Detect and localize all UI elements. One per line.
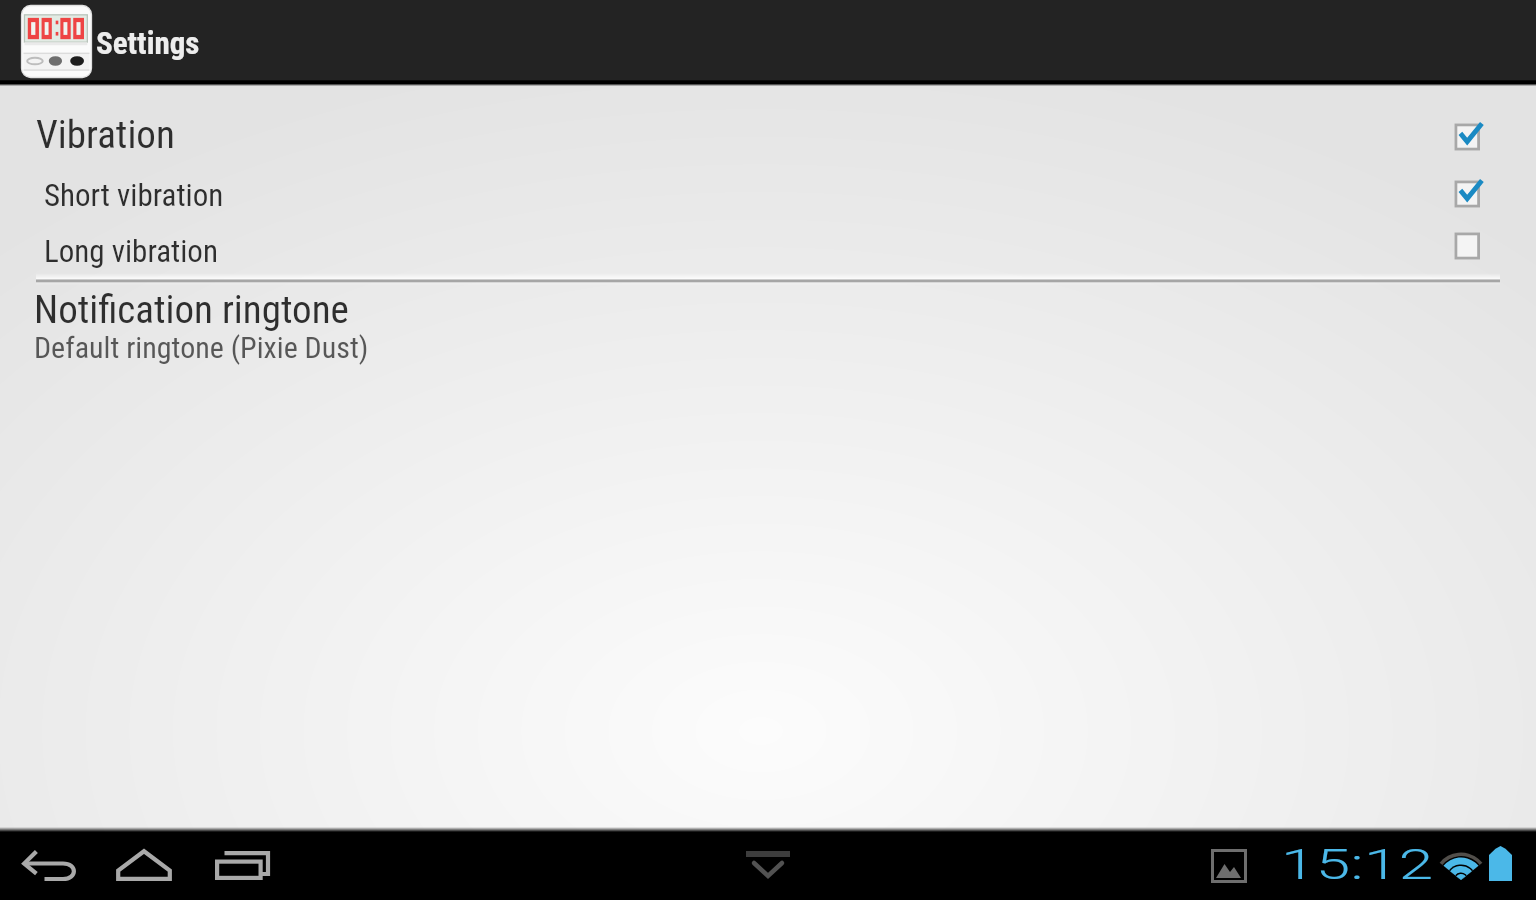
button[interactable]: Long vibration [0, 233, 1536, 287]
button[interactable]: Home [96, 838, 192, 894]
button[interactable]: Stopwatch app icon [21, 5, 92, 78]
staticText: Default ringtone (Pixie Dust) [34, 330, 369, 365]
staticText: Short vibration [44, 177, 224, 213]
button[interactable]: Notification ringtone [0, 283, 1536, 371]
button[interactable]: Short vibration [0, 177, 1536, 231]
staticText: Settings [96, 25, 200, 61]
button[interactable]: Recent apps [192, 838, 288, 894]
staticText: Notification ringtone [34, 287, 349, 333]
other: Wi-Fi connected [1441, 847, 1481, 880]
staticText: Long vibration [44, 233, 218, 269]
button[interactable]: Vibration [0, 112, 1536, 169]
button[interactable]: Back [0, 838, 96, 894]
button[interactable]: Short vibration checkbox [1443, 173, 1497, 217]
staticText: Vibration [36, 112, 175, 158]
button[interactable]: Hide keyboard [736, 842, 800, 892]
button[interactable]: Screenshot captured [1204, 842, 1254, 890]
button[interactable]: Vibration checkbox [1443, 116, 1497, 160]
other: Battery full [1488, 846, 1513, 881]
staticText: 15:12 [1281, 838, 1434, 889]
button[interactable]: Long vibration checkbox [1443, 225, 1497, 269]
